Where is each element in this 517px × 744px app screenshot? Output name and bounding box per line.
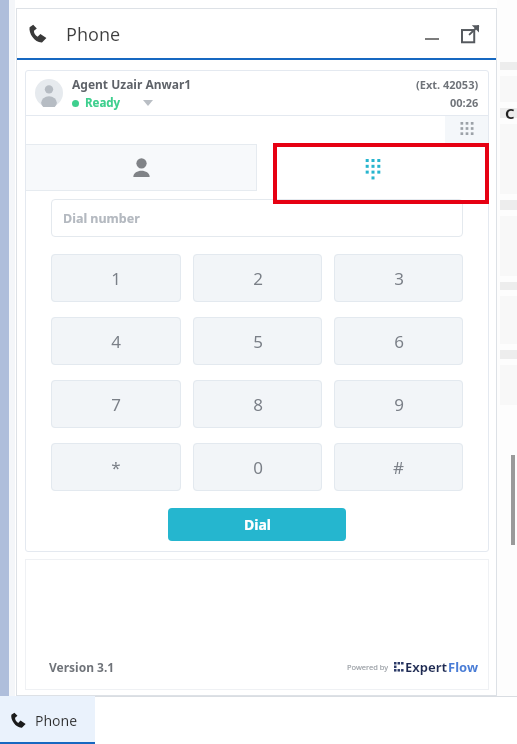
staticText: Powered by — [347, 662, 389, 672]
staticText: 8 — [253, 393, 263, 416]
staticText: 3 — [394, 267, 404, 290]
button[interactable]: 9 — [334, 380, 463, 428]
button[interactable]: 2 — [193, 254, 322, 302]
staticText: 7 — [111, 393, 121, 416]
staticText: 2 — [253, 267, 263, 290]
staticText: C — [505, 103, 515, 123]
staticText: 9 — [394, 393, 404, 416]
staticText: Phone — [66, 22, 121, 47]
button[interactable]: Dial number — [51, 199, 463, 237]
button[interactable]: Minimize — [419, 21, 445, 47]
button[interactable]: Dial pad — [257, 144, 489, 191]
button[interactable]: * — [51, 443, 181, 491]
button[interactable]: Change status — [72, 95, 153, 111]
button[interactable]: 6 — [334, 317, 463, 365]
staticText: 00:26 — [450, 95, 479, 110]
staticText: Agent Uzair Anwar1 — [72, 76, 192, 92]
staticText: 1 — [111, 267, 121, 290]
staticText: 6 — [394, 330, 404, 353]
staticText: Expert — [405, 658, 448, 676]
button[interactable]: 8 — [193, 380, 322, 428]
button[interactable]: Keypad — [445, 116, 489, 144]
button[interactable]: Phone — [0, 696, 95, 744]
staticText: 4 — [111, 330, 121, 353]
staticText: Phone — [35, 711, 78, 730]
button[interactable]: 7 — [51, 380, 181, 428]
staticText: Ready — [85, 95, 121, 111]
button[interactable]: 0 — [193, 443, 322, 491]
staticText: # — [393, 456, 404, 479]
button[interactable]: 1 — [51, 254, 181, 302]
staticText: Flow — [448, 658, 479, 676]
button[interactable]: 5 — [193, 317, 322, 365]
button[interactable]: # — [334, 443, 463, 491]
staticText: Dial number — [63, 210, 140, 227]
staticText: 0 — [253, 456, 263, 479]
button[interactable]: 4 — [51, 317, 181, 365]
staticText: (Ext. 42053) — [416, 77, 479, 92]
button[interactable]: 3 — [334, 254, 463, 302]
staticText: * — [111, 456, 121, 479]
staticText: 5 — [253, 330, 263, 353]
button[interactable]: Dial — [168, 508, 346, 541]
button[interactable]: Open in new window — [457, 21, 483, 47]
button[interactable]: Contacts — [25, 144, 257, 191]
staticText: Version 3.1 — [49, 659, 115, 675]
staticText: Dial — [244, 515, 271, 534]
